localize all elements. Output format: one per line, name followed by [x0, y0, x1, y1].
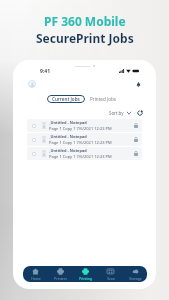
button[interactable]: Home: [23, 267, 48, 282]
button[interactable]: Refresh: [136, 109, 144, 117]
button[interactable]: Sort by: [108, 109, 132, 117]
button[interactable]: Printing: [73, 267, 98, 282]
staticText: SecurePrint Jobs: [36, 30, 134, 46]
button[interactable]: Scan: [98, 267, 123, 282]
staticText: Page 1 Copy 1 7/6/2021 12:23 PM: [49, 140, 112, 145]
staticText: Printers: [54, 276, 67, 281]
staticText: _Untitled - Notepad: [49, 134, 87, 139]
button[interactable]: Secure job: [132, 150, 139, 157]
staticText: 9:41: [40, 68, 50, 74]
staticText: _Untitled - Notepad: [49, 120, 87, 125]
staticText: Printing: [79, 276, 92, 281]
staticText: PF 360 Mobile: [44, 13, 126, 29]
button[interactable]: Storage: [123, 267, 147, 282]
button[interactable]: _Untitled - Notepad: [27, 147, 142, 160]
button[interactable]: Secure job: [132, 122, 139, 129]
button[interactable]: Secure job: [132, 136, 139, 143]
staticText: Storage: [129, 276, 142, 281]
staticText: Sort by: [109, 110, 124, 116]
staticText: _Untitled - Notepad: [49, 148, 87, 153]
button[interactable]: Profile: [28, 80, 36, 88]
button[interactable]: _Untitled - Notepad: [27, 119, 142, 132]
staticText: Page 1 Copy 1 7/6/2021 12:23 PM: [49, 154, 112, 159]
staticText: Current Jobs: [52, 96, 80, 102]
staticText: Page 1 Copy 1 7/6/2021 12:23 PM: [49, 126, 112, 131]
staticText: Printed Jobs: [90, 96, 117, 102]
button[interactable]: Current Jobs: [47, 95, 85, 103]
staticText: Home: [31, 276, 41, 281]
button[interactable]: Notifications: [134, 80, 143, 89]
button[interactable]: Printers: [48, 267, 73, 282]
button[interactable]: Printed Jobs: [85, 95, 122, 103]
button[interactable]: _Untitled - Notepad: [27, 133, 142, 146]
staticText: Scan: [107, 276, 115, 281]
